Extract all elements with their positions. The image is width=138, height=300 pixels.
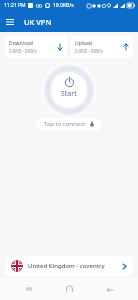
staticText: United Kingdom - coventry [28,262,122,270]
staticText: Upload [75,40,92,47]
staticText: 11:21 PM [4,2,26,9]
button[interactable]: Upload [71,36,133,58]
button[interactable]: Recent apps [18,278,40,300]
button[interactable]: Menu [0,12,20,32]
staticText: Start [61,89,77,99]
staticText: UK VPN [24,17,52,27]
button[interactable]: United Kingdom - coventry [5,256,133,276]
button[interactable]: Start VPN [41,62,97,118]
button[interactable]: Home [58,278,80,300]
staticText: 0.0KB - 0KB/s [9,48,37,54]
staticText: 0.0KB - 0KB/s [75,48,103,54]
button[interactable]: Download [5,36,67,58]
button[interactable]: Tap to connect [36,118,102,131]
staticText: Tap to connect [44,120,86,128]
staticText: Download [9,40,33,47]
staticText: 19.0KB/s [53,2,74,9]
button[interactable]: Back [98,278,120,300]
